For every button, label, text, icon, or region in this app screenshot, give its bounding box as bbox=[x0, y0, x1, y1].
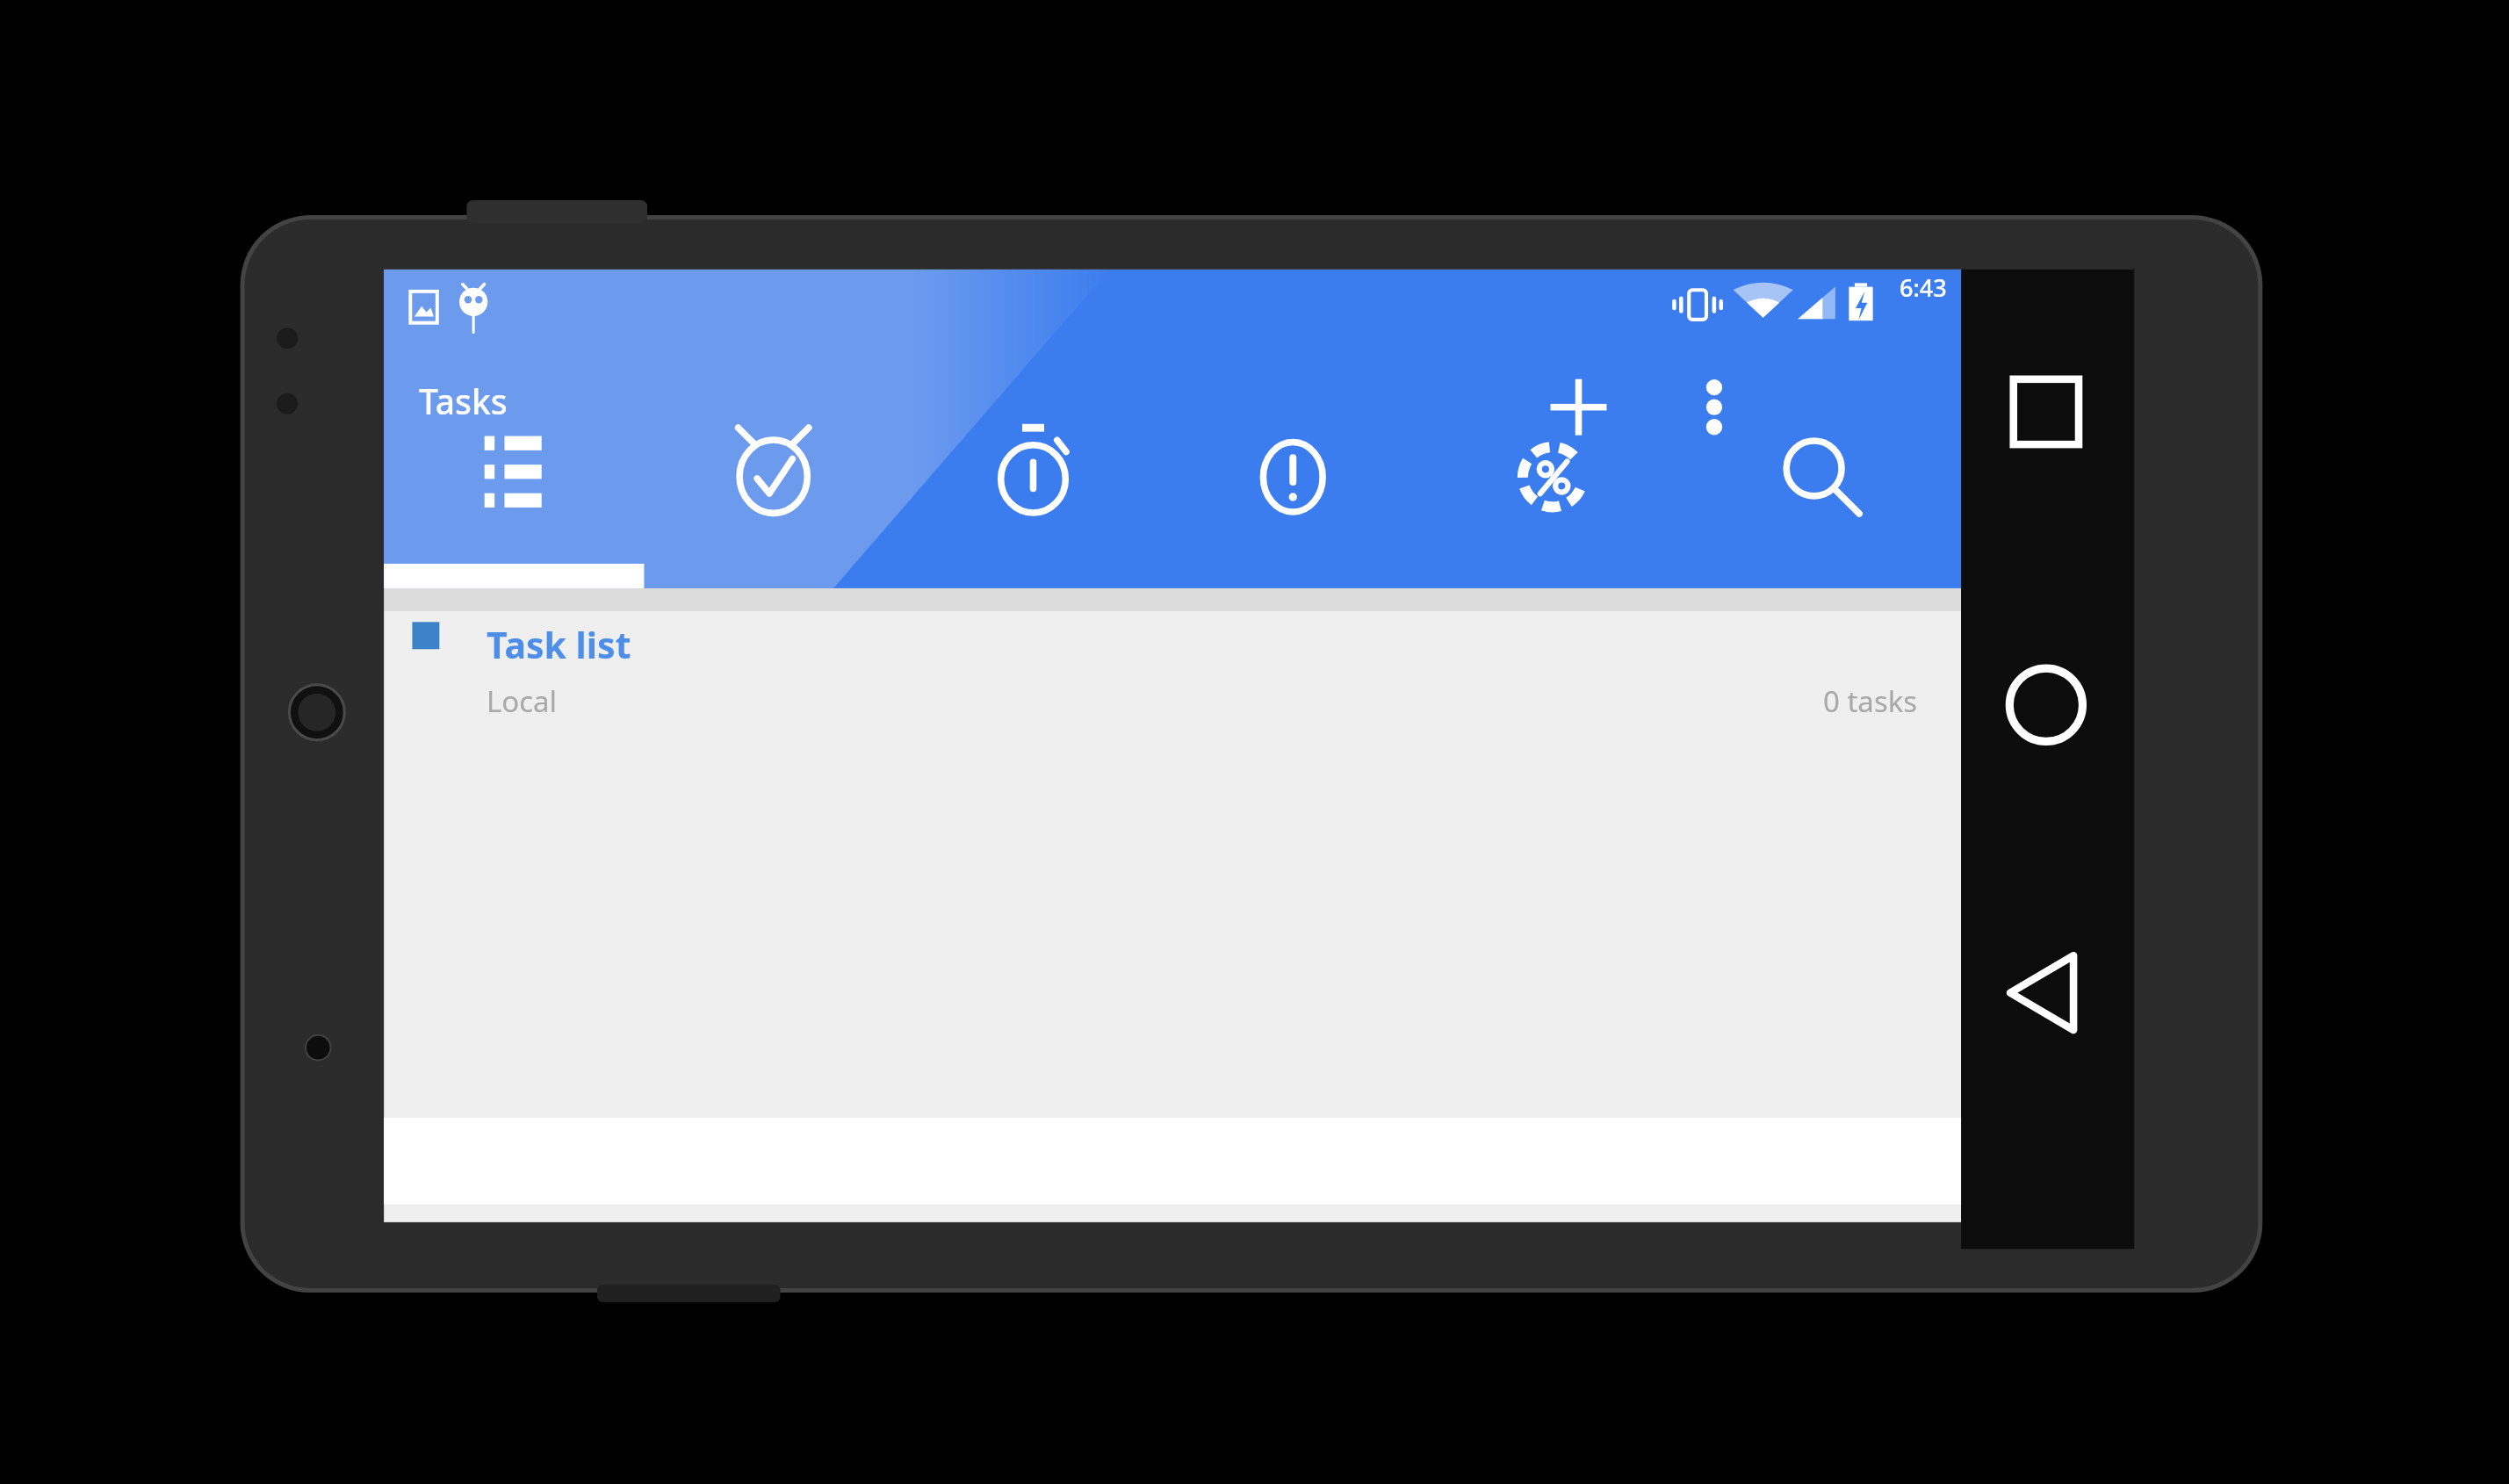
button[interactable]: Timers tab bbox=[903, 491, 1162, 587]
button[interactable]: Alarms tab bbox=[643, 491, 902, 587]
button[interactable]: Task list, Local, 0 tasks bbox=[384, 599, 1960, 709]
button[interactable]: Home bbox=[1984, 660, 2106, 747]
button[interactable]: Back bbox=[1984, 948, 2106, 1035]
button[interactable]: Recents bbox=[1984, 368, 2106, 455]
staticText: Task list bbox=[487, 620, 631, 669]
button[interactable]: Priority tab bbox=[1163, 491, 1422, 587]
button[interactable]: Lists tab bbox=[384, 491, 643, 587]
staticText: Tasks bbox=[419, 378, 508, 424]
button[interactable]: Progress tab bbox=[1423, 491, 1682, 587]
button[interactable]: Search tab bbox=[1683, 491, 1942, 587]
staticText: 6:43 bbox=[1900, 271, 1947, 304]
staticText: 0 tasks bbox=[1823, 681, 1918, 721]
button[interactable]: Add task list bbox=[1508, 321, 1647, 425]
button[interactable]: More options bbox=[1647, 321, 1782, 425]
staticText: Local bbox=[487, 681, 558, 721]
